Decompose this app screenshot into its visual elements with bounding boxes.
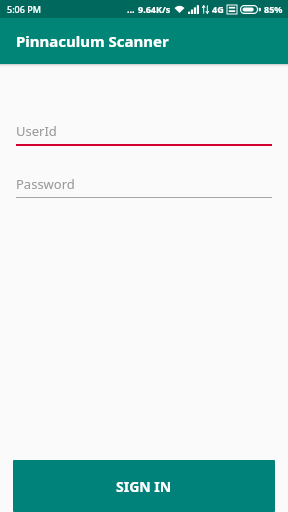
button[interactable]: UserId	[16, 122, 272, 146]
staticText: 85%	[264, 3, 283, 15]
button[interactable]: Password	[16, 175, 272, 198]
other: Cellular signal	[188, 5, 199, 14]
other: VoLTE	[227, 5, 237, 14]
staticText: 5:06 PM	[7, 3, 41, 15]
staticText: Pinnaculum Scanner	[16, 31, 169, 51]
staticText: Password	[16, 175, 75, 193]
staticText: UserId	[16, 122, 57, 140]
button[interactable]: SIGN IN	[13, 460, 275, 512]
staticText: SIGN IN	[116, 477, 172, 496]
other: Data transfer	[202, 5, 209, 14]
other: Wi-Fi	[174, 5, 185, 14]
staticText: ...	[127, 3, 135, 15]
staticText: 9.64K/s	[138, 3, 171, 15]
staticText: 4G	[212, 3, 224, 15]
other: Battery 85 percent	[240, 5, 261, 14]
